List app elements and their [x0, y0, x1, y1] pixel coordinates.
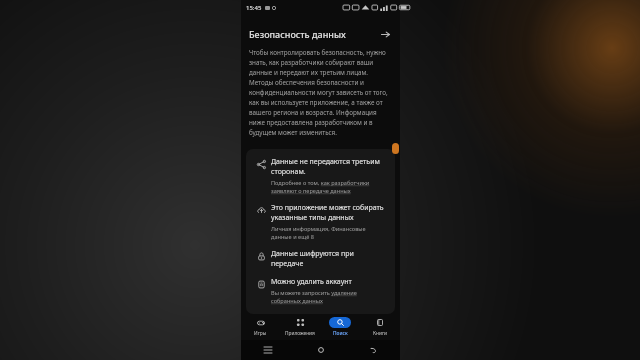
staticText: Поиск — [333, 330, 348, 337]
staticText: Подробнее о том, как разработчики заявля… — [271, 179, 387, 195]
staticText: Книги — [373, 330, 388, 337]
button[interactable]: Приложения — [280, 314, 320, 340]
button[interactable]: Недавние приложения — [241, 340, 294, 360]
button[interactable]: Поиск — [320, 314, 360, 340]
staticText: Можно удалить аккаунт — [271, 277, 352, 287]
staticText: Приложения — [285, 330, 315, 337]
button[interactable]: Данные не передаются третьим сторонам. — [251, 157, 387, 195]
button[interactable]: Главный экран — [294, 340, 347, 360]
button[interactable]: Назад — [347, 340, 400, 360]
button[interactable]: Книги — [360, 314, 400, 340]
staticText: Вы можете запросить удаление собранных д… — [271, 289, 387, 305]
staticText: Чтобы контролировать безопасность, нужно… — [249, 48, 392, 137]
button[interactable]: Можно удалить аккаунт — [251, 277, 387, 305]
staticText: 15:45 — [246, 4, 262, 12]
button[interactable]: Данные шифруются при передаче — [251, 249, 387, 269]
button[interactable]: Игры — [241, 314, 280, 340]
button[interactable]: Это приложение может собирать указанные … — [251, 203, 387, 241]
button[interactable]: Безопасность данных — [241, 25, 400, 43]
staticText: Безопасность данных — [249, 28, 346, 40]
staticText: Личная информация, Финансовые данные и е… — [271, 225, 387, 241]
staticText: Данные шифруются при передаче — [271, 249, 387, 269]
staticText: Игры — [254, 330, 267, 337]
staticText: Это приложение может собирать указанные … — [271, 203, 387, 223]
staticText: Данные не передаются третьим сторонам. — [271, 157, 387, 177]
button[interactable]: Подробнее о безопасности данных — [378, 27, 392, 41]
